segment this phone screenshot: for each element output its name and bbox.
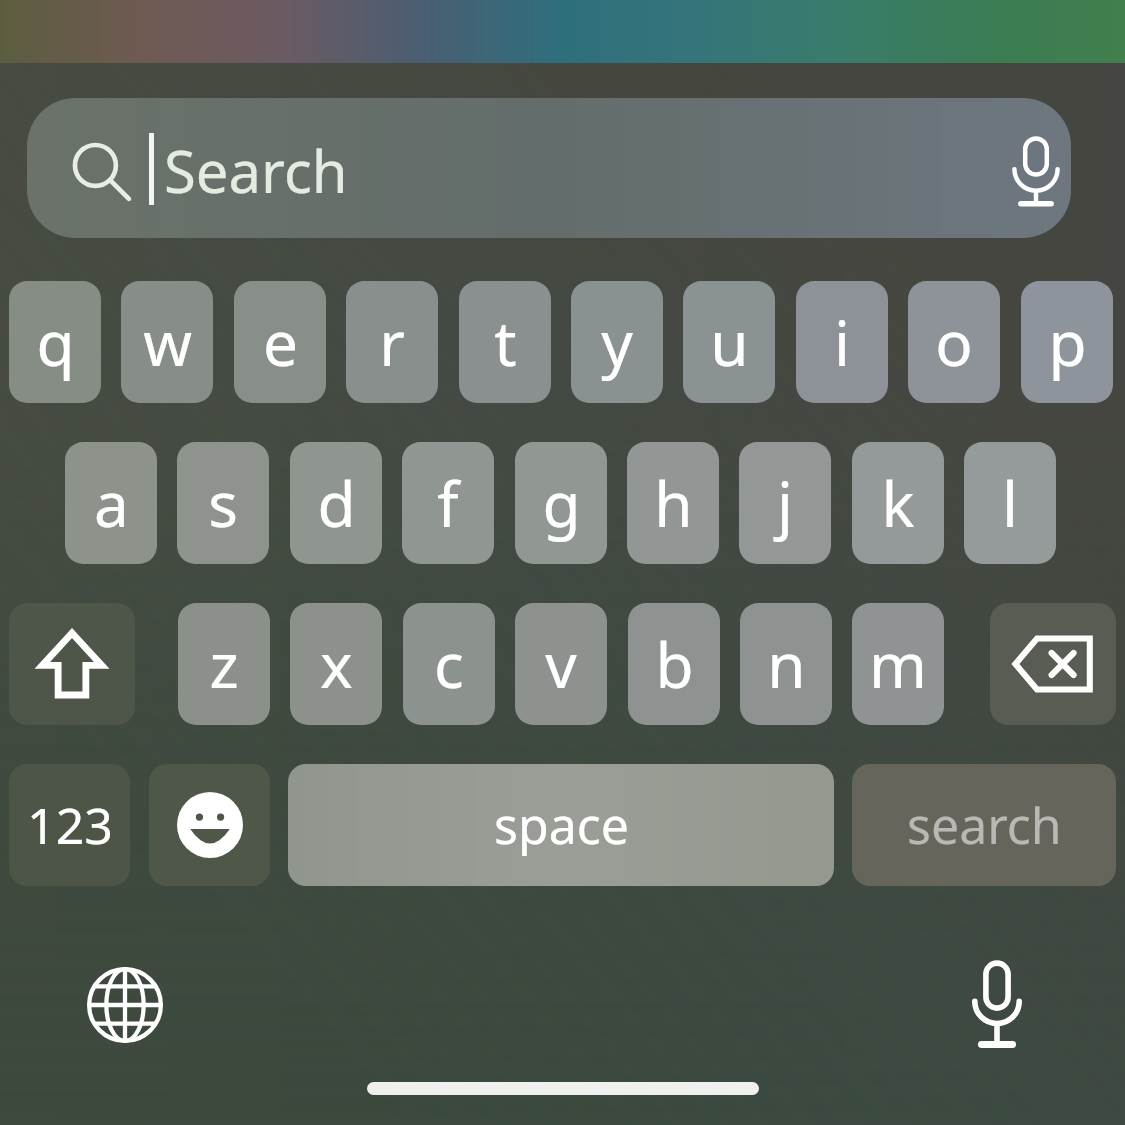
staticText: p — [1048, 300, 1087, 384]
button[interactable]: y — [571, 281, 663, 403]
staticText: h — [654, 461, 693, 545]
button[interactable]: b — [628, 603, 720, 725]
staticText: f — [437, 461, 459, 545]
staticText: 123 — [27, 791, 113, 859]
button[interactable]: o — [908, 281, 1000, 403]
button[interactable]: m — [852, 603, 944, 725]
other: Dictate — [1000, 136, 1072, 208]
staticText: y — [601, 300, 633, 384]
button[interactable]: Next keyboard — [72, 952, 178, 1058]
button[interactable]: 123 — [9, 764, 130, 886]
button[interactable]: p — [1021, 281, 1113, 403]
button[interactable]: Dictation — [944, 952, 1050, 1058]
button[interactable]: g — [515, 442, 607, 564]
button[interactable]: j — [739, 442, 831, 564]
staticText: u — [710, 300, 749, 384]
button[interactable]: r — [346, 281, 438, 403]
button[interactable]: i — [796, 281, 888, 403]
button[interactable]: u — [683, 281, 775, 403]
button[interactable]: d — [290, 442, 382, 564]
staticText: c — [434, 622, 464, 706]
button[interactable]: e — [234, 281, 326, 403]
staticText: search — [907, 791, 1062, 859]
staticText: g — [542, 461, 581, 545]
staticText: i — [834, 300, 850, 384]
staticText: s — [208, 461, 238, 545]
button[interactable]: c — [403, 603, 495, 725]
button[interactable]: f — [402, 442, 494, 564]
button[interactable]: Delete — [990, 603, 1116, 725]
button[interactable]: z — [178, 603, 270, 725]
staticText: j — [777, 461, 793, 545]
other: Search — [70, 140, 132, 202]
button[interactable]: s — [177, 442, 269, 564]
staticText: a — [94, 461, 129, 545]
button[interactable]: w — [121, 281, 213, 403]
button[interactable]: l — [964, 442, 1056, 564]
staticText: e — [263, 300, 298, 384]
button[interactable]: n — [740, 603, 832, 725]
staticText: l — [1002, 461, 1018, 545]
staticText: k — [881, 461, 915, 545]
button[interactable]: t — [459, 281, 551, 403]
staticText: n — [767, 622, 806, 706]
button[interactable]: v — [515, 603, 607, 725]
staticText: v — [545, 622, 577, 706]
staticText: b — [655, 622, 694, 706]
button[interactable]: a — [65, 442, 157, 564]
button[interactable]: Shift — [9, 603, 135, 725]
button[interactable]: x — [290, 603, 382, 725]
staticText: z — [209, 622, 239, 706]
button[interactable]: search — [852, 764, 1116, 886]
button[interactable]: q — [9, 281, 101, 403]
button[interactable]: Emoji — [149, 764, 270, 886]
staticText: q — [36, 300, 75, 384]
button[interactable] — [27, 98, 1071, 238]
staticText: space — [494, 791, 629, 859]
staticText: x — [320, 622, 353, 706]
staticText: Search — [164, 131, 348, 209]
button[interactable]: k — [852, 442, 944, 564]
staticText: w — [143, 300, 192, 384]
staticText: m — [869, 622, 927, 706]
button[interactable]: space — [288, 764, 834, 886]
staticText: r — [379, 300, 405, 384]
staticText: d — [317, 461, 356, 545]
button[interactable]: h — [627, 442, 719, 564]
staticText: t — [494, 300, 517, 384]
staticText: o — [935, 300, 973, 384]
